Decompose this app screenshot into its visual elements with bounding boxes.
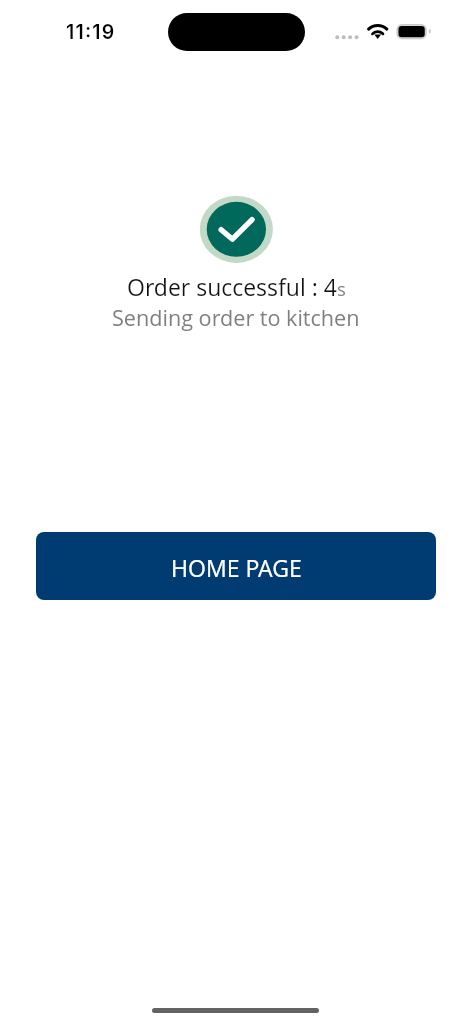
- staticText: Sending order to kitchen: [112, 303, 360, 332]
- other: Order successful: [199, 195, 274, 264]
- staticText: Order successful : 4s: [127, 271, 346, 302]
- button[interactable]: HOME PAGE: [36, 532, 436, 600]
- other: Cellular, Wi-Fi and battery status: [330, 18, 440, 46]
- staticText: HOME PAGE: [171, 552, 302, 583]
- staticText: 11:19: [66, 20, 116, 44]
